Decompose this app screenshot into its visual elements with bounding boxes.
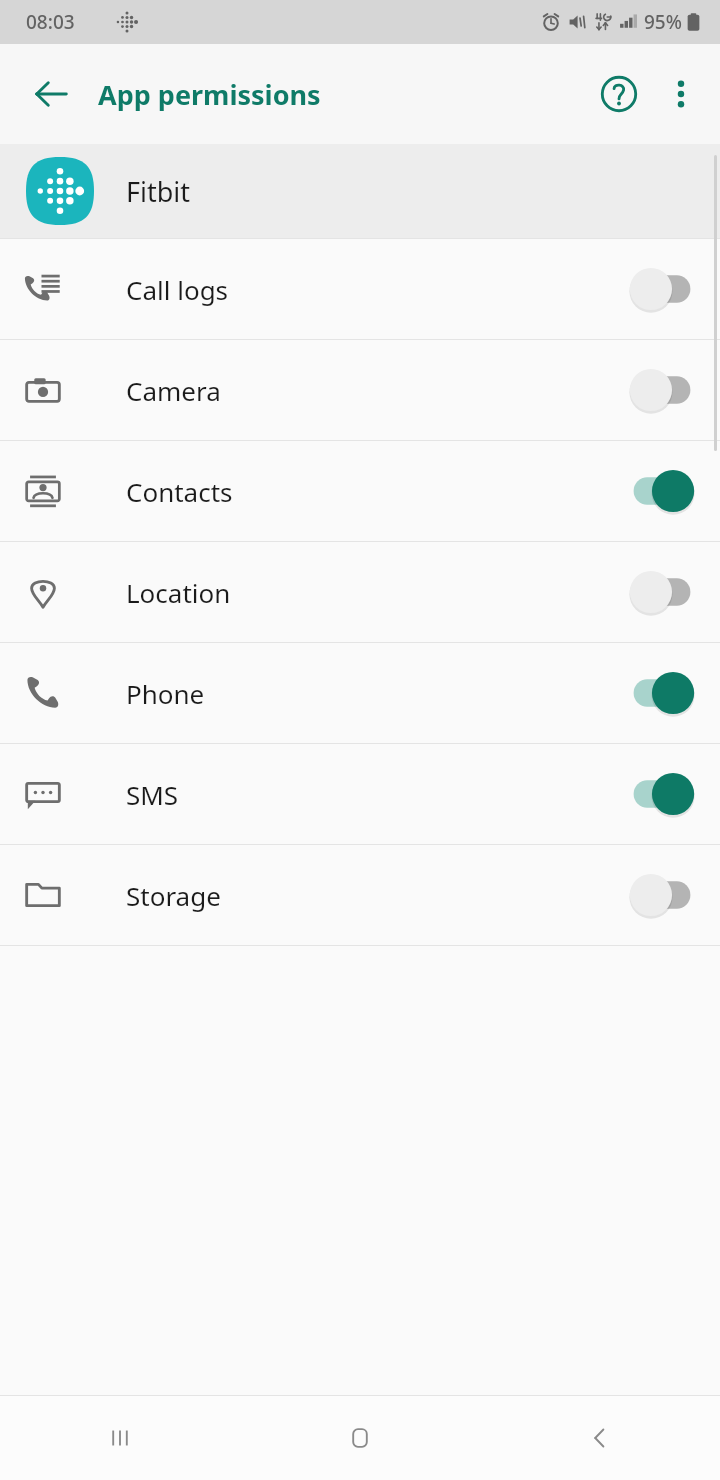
staticText: Call logs bbox=[126, 272, 229, 307]
button[interactable]: Storage bbox=[0, 845, 720, 945]
staticText: Location bbox=[126, 575, 231, 610]
button[interactable]: Fitbit bbox=[0, 144, 720, 238]
button[interactable]: Contacts permission toggle bbox=[626, 463, 698, 519]
staticText: Phone bbox=[126, 676, 205, 711]
button[interactable]: Back bbox=[20, 63, 82, 125]
button[interactable]: Call logs permission toggle bbox=[626, 261, 698, 317]
button[interactable]: Help bbox=[588, 63, 650, 125]
button[interactable]: Phone permission toggle bbox=[626, 665, 698, 721]
staticText: Camera bbox=[126, 373, 221, 408]
button[interactable]: Contacts bbox=[0, 441, 720, 541]
button[interactable]: Home bbox=[240, 1396, 480, 1480]
button[interactable]: Phone bbox=[0, 643, 720, 743]
staticText: SMS bbox=[126, 777, 179, 812]
button[interactable]: Camera permission toggle bbox=[626, 362, 698, 418]
button[interactable]: More options bbox=[650, 63, 712, 125]
button[interactable]: Call logs bbox=[0, 239, 720, 339]
staticText: Storage bbox=[126, 878, 221, 913]
staticText: Contacts bbox=[126, 474, 233, 509]
button[interactable]: SMS bbox=[0, 744, 720, 844]
staticText: 08:03 bbox=[26, 9, 75, 35]
button[interactable]: Storage permission toggle bbox=[626, 867, 698, 923]
button[interactable]: Camera bbox=[0, 340, 720, 440]
button[interactable]: Back bbox=[480, 1396, 720, 1480]
staticText: App permissions bbox=[98, 76, 321, 113]
button[interactable]: Location bbox=[0, 542, 720, 642]
button[interactable]: Location permission toggle bbox=[626, 564, 698, 620]
staticText: 95% bbox=[644, 9, 682, 35]
button[interactable]: SMS permission toggle bbox=[626, 766, 698, 822]
staticText: Fitbit bbox=[126, 173, 191, 210]
button[interactable]: Recents bbox=[0, 1396, 240, 1480]
